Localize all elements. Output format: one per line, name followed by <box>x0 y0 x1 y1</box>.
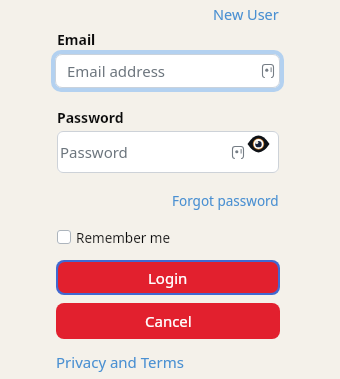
button[interactable]: New User <box>213 4 279 24</box>
staticText: Remember me <box>76 229 171 247</box>
button[interactable]: Email address <box>55 54 280 88</box>
staticText: Password <box>57 108 124 127</box>
button[interactable]: Cancel <box>56 303 280 339</box>
staticText: Email address <box>67 61 166 81</box>
button[interactable] <box>57 230 71 244</box>
button[interactable] <box>248 136 269 152</box>
staticText: Login <box>148 268 188 288</box>
button[interactable]: Password <box>57 131 279 173</box>
button[interactable]: Forgot password <box>172 192 279 210</box>
staticText: Email <box>57 30 96 49</box>
staticText: Cancel <box>145 311 192 331</box>
button[interactable]: Login <box>58 262 278 293</box>
staticText: Password <box>60 142 128 162</box>
button[interactable]: Privacy and Terms <box>56 352 184 372</box>
